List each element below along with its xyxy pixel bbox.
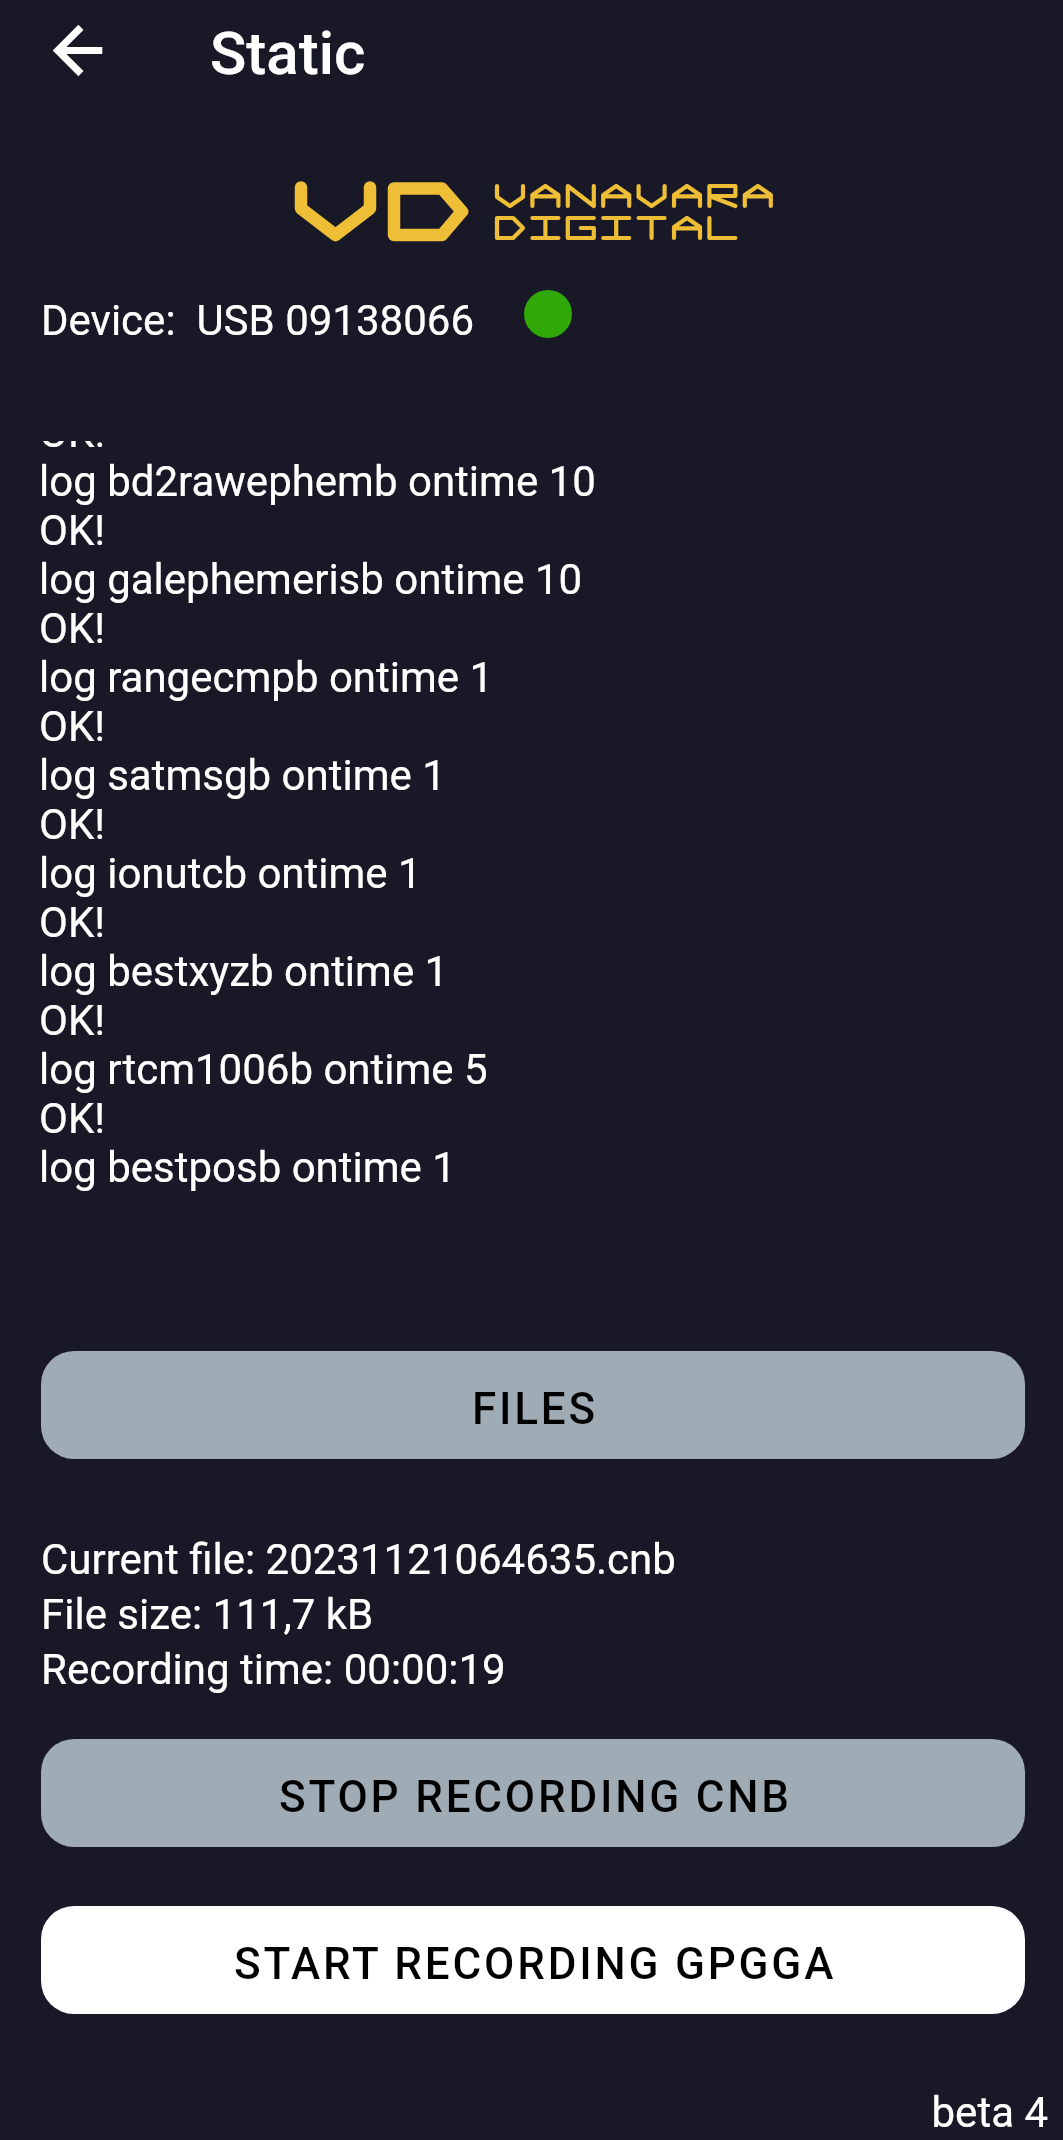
- staticText: START RECORDING GPGGA: [234, 1938, 837, 1990]
- other: Device connected: [524, 290, 572, 338]
- staticText: Static: [210, 18, 366, 88]
- button[interactable]: Navigate back: [29, 2, 125, 98]
- staticText: beta 4: [0, 2088, 1048, 2137]
- other: Vanavara Digital: [290, 175, 790, 255]
- staticText: Current file: 20231121064635.cnb File si…: [41, 1535, 676, 1694]
- staticText: Device: USB 09138066: [41, 296, 474, 345]
- staticText: STOP RECORDING CNB: [279, 1771, 792, 1823]
- button[interactable]: FILES: [41, 1351, 1025, 1459]
- button[interactable]: START RECORDING GPGGA: [41, 1906, 1025, 2014]
- staticText: OK! log bd2rawephemb ontime 10 OK! log g…: [39, 441, 596, 1192]
- staticText: FILES: [472, 1383, 598, 1435]
- button[interactable]: STOP RECORDING CNB: [41, 1739, 1025, 1847]
